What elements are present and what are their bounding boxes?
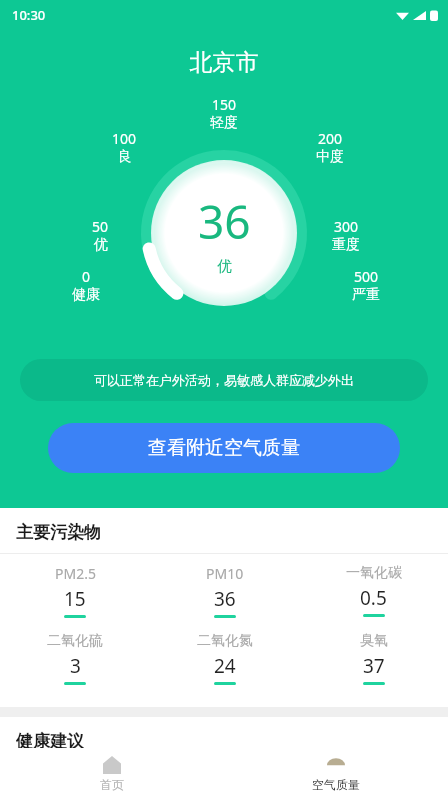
staticText: PM2.5 [55, 564, 96, 583]
staticText: 查看附近空气质量 [148, 436, 300, 460]
staticText: 24 [214, 653, 236, 679]
staticText: 重度 [332, 236, 360, 254]
staticText: PM10 [206, 564, 244, 583]
staticText: 一氧化碳 [346, 564, 402, 582]
staticText: 轻度 [210, 114, 238, 132]
staticText: 200 [318, 129, 343, 148]
staticText: 空气质量 [312, 777, 360, 792]
staticText: 健康 [72, 286, 100, 304]
staticText: 10:30 [12, 6, 46, 24]
staticText: 300 [334, 217, 359, 236]
staticText: 3 [70, 653, 81, 679]
staticText: 中度 [316, 148, 344, 166]
staticText: 150 [212, 95, 237, 114]
staticText: 优 [217, 257, 232, 276]
staticText: 0.5 [360, 585, 387, 611]
staticText: 0 [82, 267, 91, 286]
staticText: 优 [94, 236, 108, 254]
button[interactable]: 空气质量 [224, 748, 448, 800]
staticText: 健康建议 [16, 731, 84, 748]
staticText: 良 [118, 148, 132, 166]
staticText: 二氧化氮 [197, 632, 253, 650]
staticText: 15 [64, 586, 86, 612]
staticText: 100 [112, 129, 137, 148]
button[interactable]: 可以正常在户外活动，易敏感人群应减少外出 [20, 359, 428, 401]
staticText: 37 [363, 653, 385, 679]
button[interactable]: 首页 [0, 748, 224, 800]
staticText: 50 [92, 217, 109, 236]
staticText: 臭氧 [360, 632, 388, 650]
staticText: 500 [354, 267, 379, 286]
staticText: 36 [198, 190, 251, 253]
staticText: 首页 [100, 777, 124, 792]
staticText: 可以正常在户外活动，易敏感人群应减少外出 [94, 372, 354, 388]
staticText: 北京市 [0, 48, 448, 77]
staticText: 二氧化硫 [47, 632, 103, 650]
button[interactable]: 查看附近空气质量 [48, 423, 400, 473]
staticText: 主要污染物 [16, 522, 101, 543]
staticText: 严重 [352, 286, 380, 304]
staticText: 36 [214, 586, 236, 612]
